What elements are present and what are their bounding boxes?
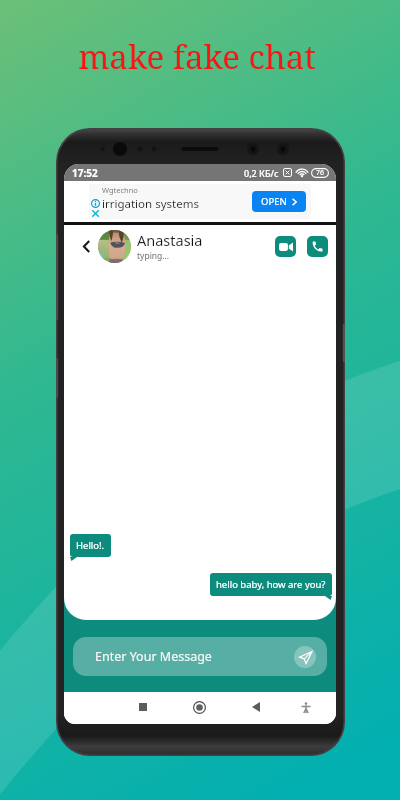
- button[interactable]: Video call: [275, 236, 296, 257]
- staticText: Anastasia: [137, 230, 203, 250]
- staticText: OPEN: [261, 195, 287, 208]
- button[interactable]: Close ad: [91, 209, 100, 218]
- button[interactable]: Profile photo: [98, 230, 131, 263]
- button[interactable]: Call: [307, 236, 328, 257]
- staticText: Enter Your Message: [95, 648, 212, 665]
- button[interactable]: OPEN: [252, 191, 306, 212]
- button[interactable]: Back: [246, 697, 266, 717]
- button[interactable]: Accessibility: [296, 697, 316, 717]
- button[interactable]: Enter Your Message: [73, 637, 327, 676]
- button[interactable]: Ad info: [91, 199, 100, 208]
- staticText: 76: [316, 168, 325, 178]
- button[interactable]: Back: [78, 238, 94, 254]
- staticText: 0,2 КБ/c: [244, 167, 279, 179]
- button[interactable]: Hello!.: [70, 534, 111, 557]
- staticText: Hello!.: [76, 539, 105, 552]
- staticText: typing...: [137, 250, 170, 262]
- staticText: hello baby, how are you?: [216, 578, 326, 591]
- button[interactable]: Home: [189, 697, 209, 717]
- button[interactable]: Recents: [133, 697, 153, 717]
- staticText: 17:52: [72, 166, 98, 180]
- staticText: irrigation systems: [102, 196, 199, 212]
- button[interactable]: Send: [294, 646, 316, 668]
- button[interactable]: hello baby, how are you?: [210, 573, 332, 596]
- staticText: make fake chat: [78, 34, 316, 79]
- staticText: Wgtechno: [102, 185, 138, 195]
